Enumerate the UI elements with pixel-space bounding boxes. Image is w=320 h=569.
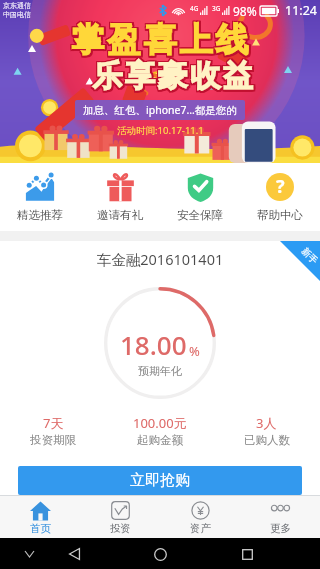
staticText: 掌盈喜上线: [69, 18, 249, 60]
button[interactable]: Recent apps: [234, 541, 260, 567]
staticText: 乐享豪收益: [90, 57, 253, 95]
staticText: 乐享豪收益: [91, 57, 254, 95]
staticText: 掌盈喜上线: [69, 19, 249, 61]
staticText: 乐享豪收益: [91, 56, 254, 94]
staticText: 乐享豪收益: [90, 56, 253, 94]
staticText: 更多: [270, 522, 291, 535]
staticText: 乐享豪收益: [90, 57, 253, 95]
button[interactable]: 首页: [0, 496, 80, 538]
staticText: 3G: [212, 4, 221, 13]
button[interactable]: Home: [147, 541, 173, 567]
staticText: 中国电信: [3, 10, 31, 19]
staticText: 乐享豪收益: [92, 56, 255, 94]
staticText: 掌盈喜上线: [70, 18, 250, 60]
staticText: 乐享豪收益: [90, 58, 253, 96]
staticText: 车金融2016101401: [0, 249, 320, 269]
staticText: 掌盈喜上线: [70, 21, 250, 63]
button[interactable]: ?: [240, 172, 320, 222]
staticText: 乐享豪收益: [92, 56, 255, 94]
button[interactable]: 资产: [160, 496, 240, 538]
staticText: 京东通信: [3, 1, 31, 10]
staticText: 乐享豪收益: [91, 56, 254, 94]
staticText: 掌盈喜上线: [71, 19, 251, 61]
staticText: 4G: [190, 4, 199, 13]
staticText: 乐享豪收益: [92, 59, 255, 97]
staticText: 乐享豪收益: [91, 59, 254, 97]
staticText: 帮助中心: [257, 208, 303, 222]
staticText: 100.00元: [133, 414, 187, 432]
staticText: 乐享豪收益: [93, 56, 256, 94]
staticText: 乐享豪收益: [90, 59, 253, 97]
staticText: 掌盈喜上线: [69, 20, 249, 62]
staticText: 乐享豪收益: [93, 58, 256, 96]
staticText: 掌盈喜上线: [72, 18, 252, 60]
staticText: 立即抢购: [130, 471, 190, 490]
staticText: 乐享豪收益: [90, 56, 253, 94]
staticText: 资产: [190, 522, 211, 535]
staticText: 7天: [43, 414, 64, 432]
button[interactable]: 邀请有礼: [80, 172, 160, 222]
button[interactable]: Back: [61, 541, 87, 567]
staticText: 乐享豪收益: [90, 56, 253, 94]
staticText: 首页: [30, 522, 51, 535]
staticText: 掌盈喜上线: [71, 18, 251, 60]
staticText: 乐享豪收益: [90, 59, 253, 97]
staticText: 掌盈喜上线: [70, 18, 250, 60]
staticText: 乐享豪收益: [93, 56, 256, 94]
staticText: 98%: [233, 3, 257, 19]
staticText: 乐享豪收益: [90, 56, 253, 94]
staticText: 掌盈喜上线: [69, 18, 249, 60]
staticText: 掌盈喜上线: [69, 20, 249, 62]
staticText: 掌盈喜上线: [72, 18, 252, 60]
staticText: 新手: [300, 245, 320, 266]
staticText: 乐享豪收益: [93, 59, 256, 97]
staticText: 掌盈喜上线: [71, 18, 251, 60]
staticText: 邀请有礼: [97, 208, 143, 222]
staticText: 掌盈喜上线: [69, 18, 249, 60]
staticText: 掌盈喜上线: [70, 19, 250, 61]
staticText: 掌盈喜上线: [69, 21, 249, 63]
staticText: 掌盈喜上线: [69, 21, 249, 63]
staticText: 乐享豪收益: [91, 58, 254, 96]
button[interactable]: 立即抢购: [18, 466, 302, 495]
staticText: 掌盈喜上线: [72, 19, 252, 61]
button[interactable]: 安全保障: [160, 172, 240, 222]
staticText: 精选推荐: [17, 208, 63, 222]
staticText: ?: [276, 174, 285, 199]
staticText: 加息、红包、iphone7...都是您的: [83, 103, 237, 117]
staticText: 预期年化: [138, 364, 182, 378]
button[interactable]: 投资: [80, 496, 160, 538]
staticText: 活动时间:10.17-11.1: [117, 124, 204, 137]
staticText: 投资期限: [30, 433, 76, 447]
staticText: 乐享豪收益: [92, 58, 255, 96]
staticText: 乐享豪收益: [90, 58, 253, 96]
staticText: 投资: [110, 522, 131, 535]
staticText: 11:24: [285, 2, 317, 19]
staticText: 掌盈喜上线: [72, 20, 252, 62]
staticText: 已购人数: [244, 433, 290, 447]
staticText: 掌盈喜上线: [71, 21, 251, 63]
staticText: 掌盈喜上线: [69, 18, 249, 60]
staticText: 起购金额: [137, 433, 183, 447]
staticText: 乐享豪收益: [92, 57, 255, 95]
button[interactable]: 更多: [240, 496, 320, 538]
button[interactable]: 精选推荐: [0, 172, 80, 222]
staticText: 3人: [256, 414, 277, 432]
staticText: 乐享豪收益: [93, 57, 256, 95]
staticText: 掌盈喜上线: [72, 21, 252, 63]
staticText: 掌盈喜上线: [69, 19, 249, 61]
staticText: 掌盈喜上线: [70, 20, 250, 62]
button[interactable]: Hide navigation bar: [20, 545, 38, 563]
staticText: 18.00: [120, 327, 187, 362]
staticText: %: [189, 342, 200, 360]
staticText: 掌盈喜上线: [71, 20, 251, 62]
staticText: 安全保障: [177, 208, 223, 222]
